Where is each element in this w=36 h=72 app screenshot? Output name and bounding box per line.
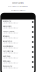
button[interactable]: Roadmap ideas <box>1 44 35 49</box>
staticText: Release plan <box>2 25 11 27</box>
button[interactable]: Release plan <box>1 24 35 29</box>
staticText: Customer calls <box>2 50 13 52</box>
button[interactable]: Hiring loop <box>1 34 35 39</box>
staticText: Everything your team is talking <box>8 6 28 7</box>
staticText: about in one calm inbox. <box>10 10 25 11</box>
staticText: Latest from the team today <box>2 57 18 59</box>
staticText: Latest from the team today <box>2 62 18 64</box>
staticText: Hiring loop <box>2 35 9 37</box>
staticText: Latest from the team today <box>2 32 18 34</box>
staticText: Latest from the team today <box>2 42 18 44</box>
staticText: Latest from the team today <box>2 52 18 54</box>
staticText: Latest from the team today <box>2 27 18 29</box>
staticText: Latest from the team today <box>2 47 18 49</box>
staticText: Roadmap ideas <box>2 45 13 47</box>
staticText: Finance sync <box>2 65 12 67</box>
staticText: Bug triage <box>2 55 10 57</box>
staticText: Conversations <box>12 2 24 4</box>
staticText: Weekly notes <box>2 40 12 42</box>
button[interactable]: Customer calls <box>1 49 35 54</box>
staticText: Latest from the team today <box>2 67 18 69</box>
button[interactable]: Finance sync <box>1 64 35 69</box>
button[interactable]: Support queue <box>1 29 35 34</box>
button[interactable]: Design sync <box>1 19 35 24</box>
staticText: Design sync <box>2 20 11 22</box>
staticText: Latest from the team today <box>2 22 18 24</box>
button[interactable]: Bug triage <box>1 54 35 59</box>
staticText: Support queue <box>2 30 14 32</box>
staticText: Offsite plan <box>2 60 10 62</box>
button[interactable]: Offsite plan <box>1 59 35 64</box>
button[interactable]: Weekly notes <box>1 39 35 44</box>
staticText: Latest from the team today <box>2 37 18 39</box>
